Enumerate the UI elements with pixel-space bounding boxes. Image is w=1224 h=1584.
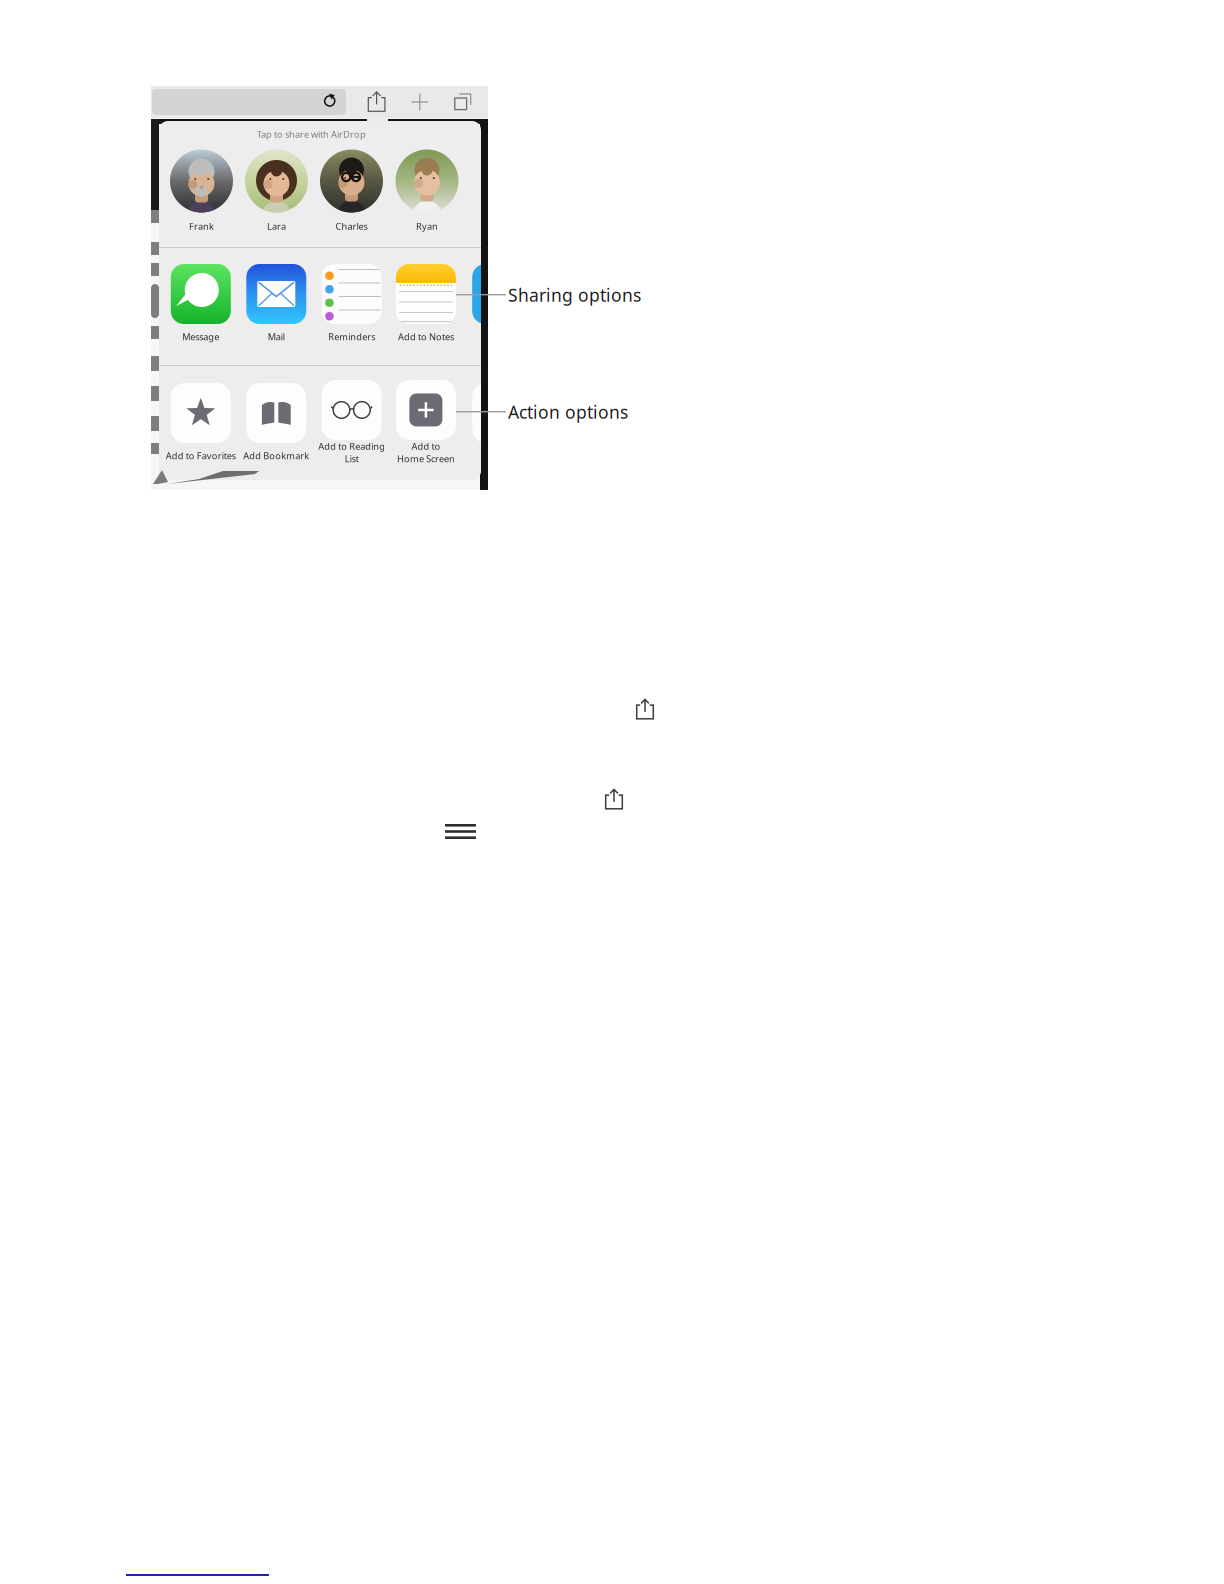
staticText: Reminders [328, 330, 375, 343]
button[interactable]: Charles [315, 149, 387, 232]
button[interactable]: Add to Notes [390, 264, 462, 343]
staticText: Action options [508, 400, 628, 424]
staticText: Home Screen [397, 452, 455, 465]
staticText: Add to Notes [398, 330, 454, 343]
staticText: Message [182, 330, 219, 343]
button[interactable]: Add to Favorites [165, 383, 237, 462]
staticText: Charles [335, 220, 367, 232]
button[interactable]: New Tab [403, 86, 437, 118]
staticText: Add to [411, 440, 440, 452]
button[interactable]: Add to [390, 383, 462, 462]
staticText: Ryan [416, 220, 438, 232]
button[interactable]: Add Bookmark [240, 383, 312, 462]
button[interactable]: Add to Reading [316, 383, 388, 462]
staticText: Add to Favorites [166, 449, 236, 462]
staticText: Lara [267, 220, 286, 232]
staticText: Sharing options [508, 283, 641, 307]
staticText: Frank [189, 220, 214, 232]
button[interactable]: Share [360, 86, 394, 118]
staticText: Add Bookmark [243, 449, 309, 462]
staticText: Add to Reading [318, 440, 385, 452]
button[interactable]: Mail [240, 264, 312, 343]
button[interactable]: Frank [165, 149, 237, 232]
button[interactable]: Lara [240, 149, 312, 232]
staticText: List [345, 452, 359, 465]
button[interactable]: Ryan [391, 149, 463, 232]
button[interactable]: Tabs [446, 86, 480, 118]
button[interactable]: Message [165, 264, 237, 343]
staticText: Mail [268, 330, 285, 343]
button[interactable]: Reminders [316, 264, 388, 343]
staticText: Tap to share with AirDrop [257, 128, 366, 140]
